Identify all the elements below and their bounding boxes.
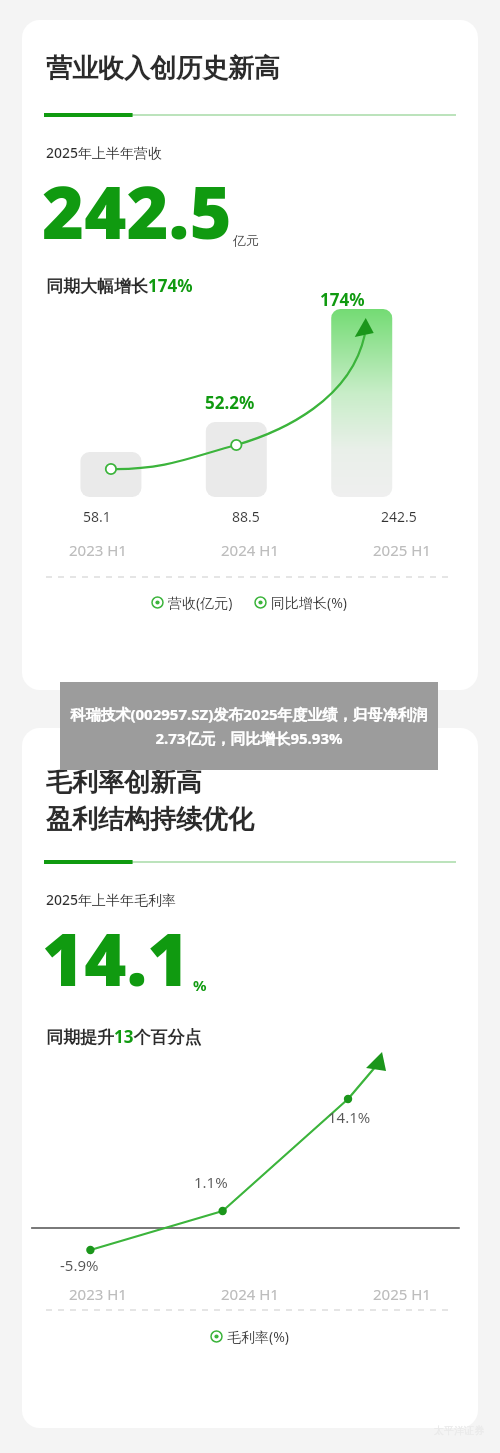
- staticText: 1.1%: [194, 1172, 228, 1192]
- staticText: 242.5: [381, 507, 417, 526]
- button[interactable]: 营业收入创历史新高: [22, 20, 478, 690]
- staticText: 同比增长(%): [271, 593, 348, 612]
- staticText: 88.5: [232, 507, 260, 526]
- button[interactable]: 同比增长(%): [255, 593, 348, 612]
- staticText: 太平洋证券: [434, 1424, 484, 1437]
- staticText: 2025年上半年营收: [46, 143, 163, 162]
- staticText: 2024 H1: [221, 1284, 279, 1304]
- staticText: 2025年上半年毛利率: [46, 890, 177, 909]
- staticText: 58.1: [83, 507, 111, 526]
- staticText: 盈利结构持续优化: [46, 803, 254, 836]
- staticText: 2025 H1: [373, 1284, 431, 1304]
- button[interactable]: 营收(亿元): [152, 593, 233, 612]
- staticText: 毛利率创新高: [46, 766, 202, 799]
- staticText: 174%: [320, 288, 365, 311]
- staticText: 营业收入创历史新高: [46, 52, 280, 85]
- staticText: 14.1: [42, 909, 190, 1007]
- staticText: 52.2%: [205, 391, 255, 414]
- staticText: 14.1%: [328, 1107, 371, 1127]
- staticText: 营收(亿元): [168, 593, 233, 612]
- staticText: -5.9%: [60, 1255, 99, 1275]
- button[interactable]: 毛利率(%): [211, 1327, 290, 1346]
- staticText: %: [193, 975, 207, 995]
- staticText: 亿元: [233, 232, 259, 248]
- staticText: 同期提升13个百分点: [46, 1025, 202, 1048]
- staticText: 2025 H1: [373, 540, 431, 560]
- staticText: 242.5: [42, 162, 232, 260]
- staticText: 2024 H1: [221, 540, 279, 560]
- button[interactable]: 毛利率创新高: [22, 728, 478, 1428]
- staticText: 毛利率(%): [227, 1327, 290, 1346]
- staticText: 2023 H1: [69, 1284, 127, 1304]
- staticText: 同期大幅增长174%: [46, 274, 193, 297]
- staticText: 2023 H1: [69, 540, 127, 560]
- staticText: 科瑞技术(002957.SZ)发布2025年度业绩，归母净利润2.73亿元，同比…: [66, 704, 432, 749]
- button[interactable]: 科瑞技术(002957.SZ)发布2025年度业绩，归母净利润2.73亿元，同比…: [60, 682, 438, 770]
